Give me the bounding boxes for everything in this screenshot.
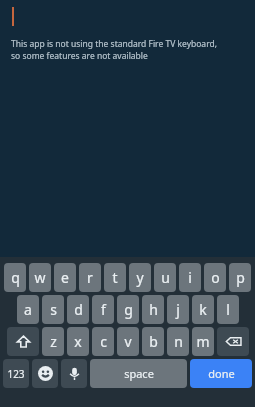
button[interactable]: v bbox=[117, 327, 139, 356]
button[interactable]: d bbox=[67, 295, 89, 324]
button[interactable]: l bbox=[217, 295, 239, 324]
staticText: z bbox=[50, 332, 57, 351]
button[interactable]: r bbox=[79, 263, 101, 292]
button[interactable]: m bbox=[192, 327, 214, 356]
button[interactable]: o bbox=[204, 263, 226, 292]
button[interactable]: n bbox=[167, 327, 189, 356]
button[interactable]: w bbox=[29, 263, 51, 292]
staticText: w bbox=[34, 268, 46, 287]
staticText: c bbox=[100, 332, 107, 351]
staticText: o bbox=[211, 268, 220, 287]
button[interactable]: k bbox=[192, 295, 214, 324]
staticText: t bbox=[112, 268, 118, 287]
button[interactable]: space bbox=[90, 359, 187, 388]
staticText: e bbox=[61, 268, 69, 287]
button[interactable]: i bbox=[179, 263, 201, 292]
staticText: j bbox=[176, 300, 180, 319]
staticText: space bbox=[124, 366, 154, 381]
staticText: v bbox=[124, 332, 132, 351]
button[interactable]: b bbox=[142, 327, 164, 356]
staticText: This app is not using the standard Fire … bbox=[11, 38, 218, 62]
staticText: y bbox=[136, 268, 144, 287]
staticText: done bbox=[208, 366, 235, 381]
staticText: m bbox=[196, 332, 210, 351]
staticText: d bbox=[74, 300, 83, 319]
button[interactable]: c bbox=[92, 327, 114, 356]
staticText: f bbox=[101, 300, 106, 319]
staticText: i bbox=[188, 268, 192, 287]
button[interactable]: 123 bbox=[3, 359, 29, 388]
button[interactable]: f bbox=[92, 295, 114, 324]
button[interactable]: Shift bbox=[7, 327, 39, 356]
button[interactable]: t bbox=[104, 263, 126, 292]
button[interactable]: z bbox=[42, 327, 64, 356]
button[interactable]: e bbox=[54, 263, 76, 292]
button[interactable]: a bbox=[17, 295, 39, 324]
button[interactable]: u bbox=[154, 263, 176, 292]
staticText: p bbox=[236, 268, 245, 287]
button[interactable]: g bbox=[117, 295, 139, 324]
staticText: u bbox=[161, 268, 170, 287]
staticText: s bbox=[50, 300, 57, 319]
staticText: g bbox=[124, 300, 133, 319]
button[interactable]: Voice input bbox=[61, 359, 87, 388]
button[interactable]: h bbox=[142, 295, 164, 324]
button[interactable]: j bbox=[167, 295, 189, 324]
staticText: b bbox=[149, 332, 158, 351]
staticText: r bbox=[87, 268, 93, 287]
staticText: n bbox=[174, 332, 183, 351]
button[interactable]: Emoji bbox=[32, 359, 58, 388]
button[interactable]: Backspace bbox=[217, 327, 249, 356]
button[interactable]: s bbox=[42, 295, 64, 324]
staticText: q bbox=[11, 268, 20, 287]
button[interactable]: y bbox=[129, 263, 151, 292]
staticText: h bbox=[149, 300, 158, 319]
staticText: x bbox=[74, 332, 82, 351]
staticText: 123 bbox=[7, 367, 25, 381]
staticText: a bbox=[24, 300, 32, 319]
button[interactable]: done bbox=[190, 359, 252, 388]
button[interactable]: x bbox=[67, 327, 89, 356]
button[interactable]: p bbox=[229, 263, 251, 292]
button[interactable]: q bbox=[4, 263, 26, 292]
staticText: l bbox=[226, 300, 230, 319]
staticText: k bbox=[199, 300, 207, 319]
